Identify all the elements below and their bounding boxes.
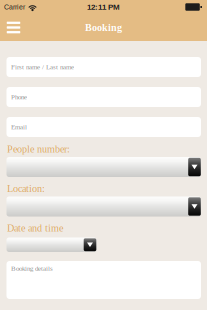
staticText: 12:11 PM [87,2,120,11]
staticText: Booking [85,22,122,33]
button[interactable]: Email [6,117,201,137]
button[interactable]: First name / Last name [6,57,201,77]
staticText: Booking details [11,264,53,272]
staticText: People number: [7,143,70,155]
button[interactable]: Phone [6,87,201,107]
button[interactable]: Booking details [6,261,201,299]
staticText: Location: [7,183,45,194]
button[interactable] [6,157,201,177]
button[interactable]: Menu [0,14,27,41]
staticText: Email [11,123,27,131]
button[interactable] [6,237,96,252]
button[interactable] [6,196,201,216]
staticText: Carrier [4,3,25,11]
staticText: Phone [11,93,27,101]
staticText: Date and time [7,222,63,234]
staticText: First name / Last name [11,63,74,71]
